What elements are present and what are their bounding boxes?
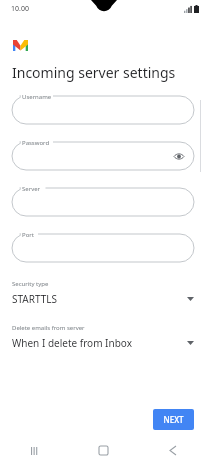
button[interactable]: Home	[69, 439, 138, 462]
button[interactable]: Port	[12, 234, 194, 262]
button[interactable]: Recent apps	[0, 439, 69, 462]
staticText: Delete emails from server	[12, 324, 85, 332]
staticText: Security type	[12, 280, 49, 288]
staticText: Incoming server settings	[12, 63, 176, 82]
staticText: Port	[22, 231, 34, 239]
button[interactable]: Security type	[0, 278, 207, 308]
button[interactable]: Show password	[173, 150, 185, 162]
staticText: STARTTLS	[12, 292, 187, 306]
button[interactable]: Delete emails from server	[0, 322, 207, 352]
staticText: Server	[22, 185, 41, 193]
button[interactable]: Password	[12, 142, 194, 170]
button[interactable]: Server	[12, 188, 194, 216]
button[interactable]: NEXT	[153, 409, 194, 430]
staticText: When I delete from Inbox	[12, 336, 187, 350]
staticText: 10.00	[11, 4, 29, 14]
staticText: Password	[22, 139, 50, 147]
button[interactable]: Back	[138, 439, 207, 462]
staticText: NEXT	[163, 414, 184, 425]
button[interactable]: Username	[12, 96, 194, 124]
staticText: Username	[22, 93, 52, 101]
